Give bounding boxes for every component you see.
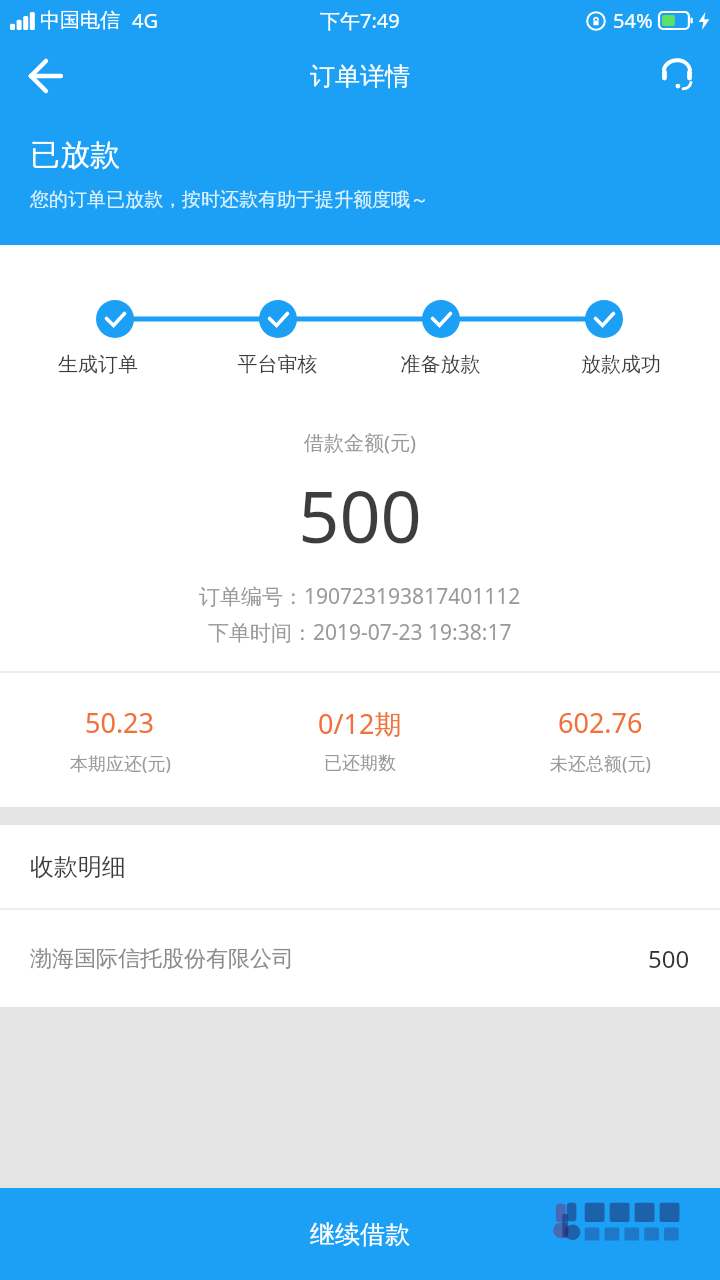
staticText: 您的订单已放款，按时还款有助于提升额度哦～ [30,188,429,212]
staticText: 生成订单 [0,352,196,377]
staticText: 收款明细 [30,852,126,882]
staticText: 渤海国际信托股份有限公司 [30,945,648,973]
staticText: 本期应还(元) [70,751,171,776]
button[interactable]: 渤海国际信托股份有限公司 [0,910,720,1007]
staticText: 0/12期 [318,705,402,742]
staticText: 未还总额(元) [550,751,651,776]
staticText: 订单编号： [199,584,304,610]
staticText: 平台审核 [196,352,359,377]
staticText: 借款金额(元) [0,429,720,456]
staticText: 下午7:49 [320,7,400,34]
staticText: 500 [0,466,720,564]
staticText: 准备放款 [359,352,522,377]
staticText: 已还期数 [324,752,396,775]
staticText: 订单详情 [310,61,410,92]
staticText: 已放款 [30,136,120,174]
button[interactable]: 0/12期 [240,705,480,775]
staticText: 54% [613,7,653,34]
button[interactable]: Back [14,45,76,107]
button[interactable]: 继续借款 [0,1188,720,1280]
staticText: 2019-07-23 19:38:17 [313,618,512,647]
staticText: 602.76 [558,704,643,741]
staticText: 50.23 [85,704,155,741]
button[interactable]: 602.76 [480,704,720,776]
staticText: 中国电信 [40,8,120,33]
staticText: 190723193817401112 [304,582,521,611]
button[interactable]: Customer service [648,47,706,105]
staticText: 下单时间： [208,620,313,646]
staticText: 继续借款 [310,1219,410,1250]
staticText: 500 [648,942,690,975]
staticText: 4G [132,7,158,34]
staticText: 放款成功 [522,352,720,377]
button[interactable]: 50.23 [0,704,240,776]
